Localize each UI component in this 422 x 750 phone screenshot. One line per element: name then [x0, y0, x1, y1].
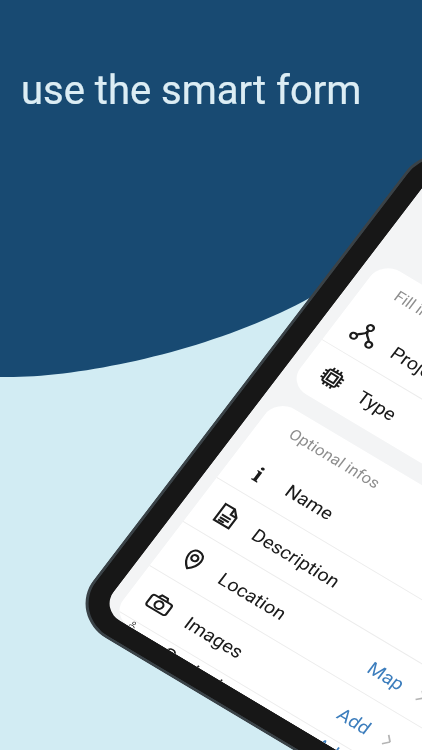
staticText: Add	[319, 734, 353, 750]
button[interactable]: Contact	[111, 610, 404, 750]
staticText: Map	[363, 657, 409, 694]
staticText: Contact	[166, 642, 228, 683]
staticText: Type	[353, 386, 401, 424]
staticText: Optional infos	[285, 425, 384, 492]
button[interactable]: Location	[149, 522, 422, 738]
staticText: Project	[386, 342, 422, 391]
staticText: Location	[214, 568, 292, 624]
button[interactable]: Description	[183, 478, 422, 694]
staticText: Name	[281, 480, 339, 524]
staticText: Description	[248, 524, 345, 592]
staticText: Add	[333, 703, 376, 738]
button[interactable]: Type	[288, 340, 422, 556]
staticText: Fill in	[390, 287, 422, 322]
button[interactable]: Images	[115, 566, 422, 750]
staticText: Images	[180, 612, 249, 662]
button[interactable]: Project	[322, 296, 422, 512]
staticText: use the smart form	[21, 67, 362, 114]
button[interactable]: i	[216, 434, 422, 650]
staticText: i	[250, 460, 272, 484]
